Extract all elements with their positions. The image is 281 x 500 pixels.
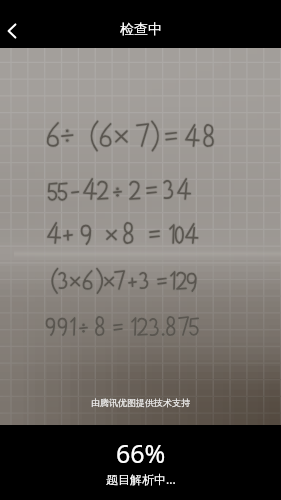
staticText: 题目解析中... [106, 471, 176, 487]
staticText: 由腾讯优图提供技术支持 [91, 397, 190, 408]
button[interactable]: Back [0, 9, 42, 51]
staticText: 检查中 [120, 21, 162, 39]
staticText: 66% [116, 436, 166, 470]
